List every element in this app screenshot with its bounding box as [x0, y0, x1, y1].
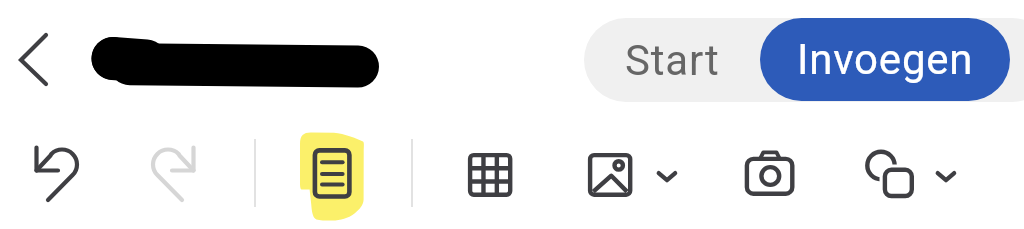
- staticText: Invoegen: [797, 35, 974, 84]
- button[interactable]: More picture options: [646, 159, 688, 191]
- button[interactable]: Shapes: [840, 134, 922, 216]
- button[interactable]: Camera: [728, 136, 810, 218]
- button[interactable]: Text box: [292, 136, 374, 218]
- button[interactable]: Table: [451, 136, 533, 218]
- button[interactable]: More shape options: [925, 159, 967, 191]
- button[interactable]: Invoegen: [760, 18, 1010, 101]
- button[interactable]: Start: [584, 18, 760, 102]
- button[interactable]: Pictures: [571, 136, 653, 218]
- staticText: Start: [625, 36, 720, 85]
- button[interactable]: Undo: [16, 134, 98, 216]
- button[interactable]: Redo: [132, 134, 214, 216]
- button[interactable]: Back: [0, 20, 68, 100]
